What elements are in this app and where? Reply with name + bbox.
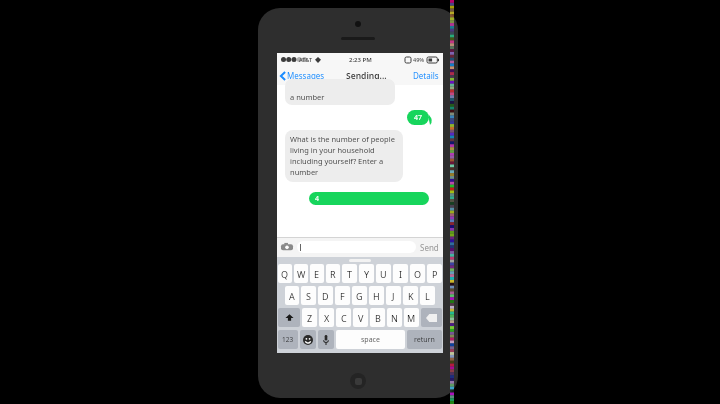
button[interactable]: T: [342, 264, 357, 283]
staticText: L: [425, 290, 430, 302]
button[interactable]: Details: [413, 70, 439, 81]
button[interactable]: W: [294, 264, 308, 283]
button[interactable]: A: [285, 286, 299, 305]
button[interactable]: U: [376, 264, 391, 283]
button[interactable]: Camera: [281, 241, 293, 253]
staticText: Q: [281, 268, 289, 280]
staticText: X: [324, 312, 330, 324]
staticText: space: [361, 335, 380, 345]
button[interactable]: Send: [420, 242, 439, 253]
button[interactable]: L: [420, 286, 435, 305]
staticText: P: [432, 268, 438, 280]
staticText: J: [392, 290, 395, 302]
button[interactable]: space: [336, 330, 405, 349]
staticText: AT&T: [299, 56, 313, 63]
button[interactable]: F: [335, 286, 350, 305]
staticText: 2:23 PM: [349, 56, 372, 64]
button[interactable]: S: [301, 286, 316, 305]
staticText: Send: [420, 242, 439, 253]
staticText: N: [391, 312, 398, 324]
button[interactable]: J: [386, 286, 401, 305]
button[interactable]: M: [404, 308, 419, 327]
button[interactable]: [297, 241, 416, 253]
staticText: R: [330, 268, 336, 280]
staticText: 49%: [413, 56, 425, 63]
button[interactable]: E: [310, 264, 324, 283]
button[interactable]: K: [403, 286, 418, 305]
button[interactable]: Q: [278, 264, 292, 283]
staticText: What is the number of people living in y…: [290, 134, 402, 177]
staticText: return: [414, 335, 435, 345]
staticText: F: [340, 290, 345, 302]
staticText: B: [375, 312, 381, 324]
button[interactable]: I: [393, 264, 408, 283]
button[interactable]: Messages: [280, 70, 325, 81]
staticText: I: [399, 268, 403, 280]
button[interactable]: B: [370, 308, 385, 327]
staticText: 123: [282, 335, 294, 344]
staticText: S: [306, 290, 311, 302]
staticText: M: [407, 312, 416, 324]
staticText: Details: [413, 70, 439, 81]
staticText: Y: [364, 268, 370, 280]
button[interactable]: Emoji: [300, 330, 316, 349]
staticText: T: [347, 268, 353, 280]
button[interactable]: Backspace: [421, 308, 442, 327]
staticText: 4: [315, 194, 320, 204]
staticText: H: [373, 290, 380, 302]
button[interactable]: C: [336, 308, 351, 327]
staticText: K: [408, 290, 414, 302]
button[interactable]: Z: [302, 308, 317, 327]
button[interactable]: H: [369, 286, 384, 305]
staticText: A: [289, 290, 295, 302]
button[interactable]: O: [410, 264, 425, 283]
button[interactable]: Dictation: [318, 330, 334, 349]
button[interactable]: X: [319, 308, 334, 327]
button[interactable]: N: [387, 308, 402, 327]
button[interactable]: Home: [350, 373, 366, 389]
button[interactable]: return: [407, 330, 442, 349]
staticText: E: [314, 268, 320, 280]
staticText: G: [356, 290, 363, 302]
staticText: 47: [414, 113, 423, 123]
button[interactable]: Shift: [278, 308, 300, 327]
button[interactable]: P: [427, 264, 442, 283]
button[interactable]: D: [318, 286, 333, 305]
staticText: O: [414, 268, 422, 280]
button[interactable]: V: [353, 308, 368, 327]
button[interactable]: 123: [278, 330, 298, 349]
staticText: Sending...: [346, 70, 387, 82]
staticText: W: [297, 268, 306, 280]
staticText: D: [322, 290, 329, 302]
staticText: U: [380, 268, 387, 280]
button[interactable]: R: [326, 264, 340, 283]
staticText: Z: [307, 312, 313, 324]
staticText: Messages: [287, 70, 325, 81]
button[interactable]: Y: [359, 264, 374, 283]
staticText: V: [358, 312, 364, 324]
staticText: C: [341, 312, 347, 324]
button[interactable]: G: [352, 286, 367, 305]
staticText: a number: [290, 92, 325, 102]
